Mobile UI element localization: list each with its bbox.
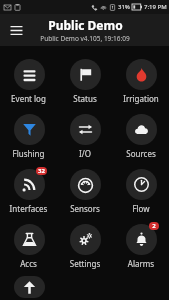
staticText: 2 <box>152 222 156 230</box>
staticText: 31% <box>118 3 130 11</box>
button[interactable]: 2 <box>113 216 169 271</box>
button[interactable]: Irrigation <box>113 51 169 106</box>
staticText: Flow <box>116 203 166 214</box>
staticText: Status <box>60 93 110 104</box>
staticText: Accs <box>3 258 54 269</box>
button[interactable]: Evaporation <box>0 271 57 300</box>
button[interactable]: Flow <box>113 161 169 216</box>
button[interactable]: I/O <box>57 106 113 161</box>
button[interactable]: Sources <box>113 106 169 161</box>
staticText: 7:19 PM <box>144 3 167 11</box>
button[interactable]: Status <box>57 51 113 106</box>
staticText: Flushing <box>3 148 54 159</box>
button[interactable]: Flushing <box>0 106 57 161</box>
staticText: Irrigation <box>116 93 166 104</box>
staticText: I/O <box>60 148 110 159</box>
button[interactable]: Sensors <box>57 161 113 216</box>
button[interactable]: Settings <box>57 216 113 271</box>
staticText: Public Demo v4.105, 19:16:09 <box>40 34 130 43</box>
staticText: Sources <box>116 148 166 159</box>
staticText: Settings <box>60 258 110 269</box>
staticText: Event log <box>3 93 54 104</box>
staticText: Alarms <box>116 258 166 269</box>
staticText: 32 <box>38 167 45 175</box>
button[interactable]: Event log <box>0 51 57 106</box>
staticText: Interfaces <box>3 203 54 214</box>
staticText: Public Demo <box>48 17 123 33</box>
button[interactable]: Accs <box>0 216 57 271</box>
button[interactable]: 32 <box>0 161 57 216</box>
button[interactable]: Open navigation menu <box>3 17 29 43</box>
staticText: Sensors <box>60 203 110 214</box>
